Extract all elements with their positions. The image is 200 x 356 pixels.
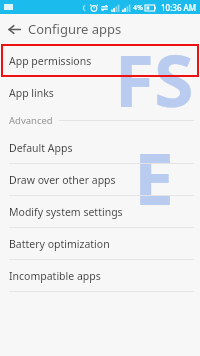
staticText: Default Apps [9, 141, 73, 155]
button[interactable]: Modify system settings [0, 196, 200, 228]
staticText: Configure apps [28, 20, 122, 38]
staticText: App permissions [9, 54, 92, 68]
button[interactable]: Battery optimization [0, 228, 200, 260]
button[interactable]: Incompatible apps [0, 260, 200, 292]
button[interactable]: Back [0, 14, 28, 44]
staticText: 4% [133, 3, 143, 13]
staticText: Battery optimization [9, 237, 110, 251]
staticText: Draw over other apps [9, 173, 116, 187]
staticText: FSE [108, 30, 200, 226]
button[interactable]: Draw over other apps [0, 164, 200, 196]
staticText: Incompatible apps [9, 269, 101, 283]
staticText: Modify system settings [9, 205, 123, 219]
button[interactable]: App permissions [1, 44, 199, 77]
staticText: 10:36 AM [161, 2, 197, 13]
button[interactable]: Default Apps [0, 132, 200, 164]
button[interactable]: App links [0, 77, 200, 108]
staticText: Advanced [9, 114, 53, 127]
staticText: App links [9, 86, 54, 100]
